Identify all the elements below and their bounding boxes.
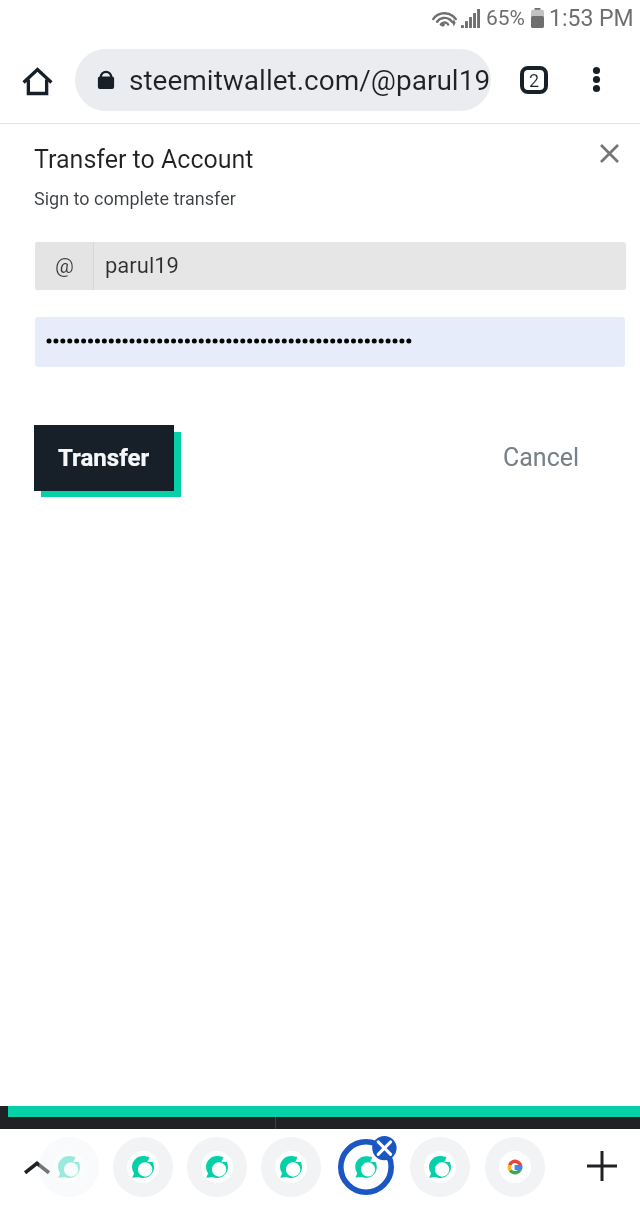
button[interactable]: Steemit tab [39,1137,99,1197]
staticText: Transfer [58,444,150,472]
button[interactable]: Cancel [494,434,588,480]
staticText: @ [55,254,74,279]
staticText: 65% [486,6,525,31]
button[interactable]: Close [588,132,630,174]
staticText: Sign to complete transfer [34,188,236,209]
button[interactable]: Steemit tab [113,1137,173,1197]
staticText: 1:53 PM [549,5,634,32]
button[interactable]: Steemit tab [187,1137,247,1197]
staticText: parul19 [105,253,179,279]
button[interactable]: Google tab [485,1137,545,1197]
button[interactable]: steemitwallet.com/@parul19 [75,49,491,111]
staticText: Cancel [503,443,580,472]
staticText: 2 [529,70,540,91]
button[interactable]: New tab [580,1144,624,1188]
staticText: steemitwallet.com/@parul19 [129,64,491,97]
button[interactable] [35,317,625,367]
button[interactable]: Steemit tab [336,1137,396,1197]
button[interactable]: Home [13,43,61,121]
button[interactable]: Steemit tab [410,1137,470,1197]
button[interactable]: Open tabs, 2 [508,41,560,119]
button[interactable]: Transfer [34,425,181,497]
button[interactable]: @ [35,242,626,290]
button[interactable]: More options [570,40,622,118]
button[interactable]: Expand toolbar [14,1144,60,1190]
button[interactable]: Steemit tab [261,1137,321,1197]
staticText: Transfer to Account [34,145,254,174]
